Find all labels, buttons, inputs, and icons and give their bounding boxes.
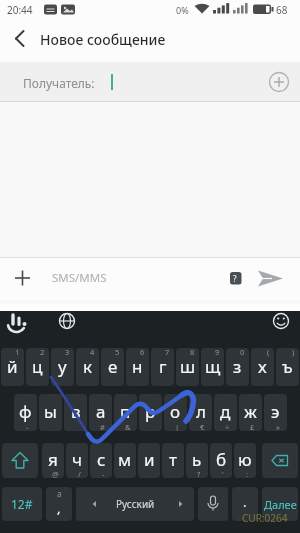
button[interactable]: о [164,394,187,431]
staticText: ю [238,448,252,471]
button[interactable]: е [101,348,124,386]
staticText: | [175,422,180,431]
staticText: ф [19,400,32,423]
button[interactable] [268,308,294,334]
staticText: ш [180,355,196,378]
staticText: 5 [115,348,120,357]
staticText: б [216,448,227,471]
button[interactable]: . [232,487,258,521]
staticText: й [7,355,18,378]
staticText: 6 [140,348,145,357]
staticText: 1 [15,348,20,357]
button[interactable] [250,262,292,294]
staticText: ' [222,469,224,478]
staticText: , [57,499,61,517]
staticText: . [243,493,247,511]
button[interactable]: ъ [276,348,299,386]
staticText: 9 [215,348,220,357]
button[interactable]: а [89,394,112,431]
staticText: » [276,422,280,431]
button[interactable]: щ [201,348,224,386]
staticText: е [108,355,118,378]
staticText: € [200,422,205,431]
button[interactable]: б [210,443,232,478]
button[interactable] [6,26,32,52]
staticText: с [97,448,106,471]
staticText: 8 [190,348,195,357]
button[interactable]: Русский [76,487,194,521]
button[interactable] [198,487,228,521]
button[interactable]: ш [176,348,199,386]
staticText: ь [192,448,202,471]
staticText: 12# [11,496,33,512]
button[interactable]: ф [14,394,37,431]
button[interactable]: ь [186,443,208,478]
staticText: ÷ [225,422,230,431]
staticText: - [102,469,105,478]
button[interactable]: з [226,348,249,386]
button[interactable]: 12# [2,487,42,521]
button[interactable] [2,443,38,478]
staticText: @ [52,469,59,478]
button[interactable]: Далее [262,487,298,521]
staticText: & [125,422,131,431]
button[interactable]: и [138,443,160,478]
button[interactable] [8,264,36,292]
staticText: ? [233,273,237,284]
staticText: £ [250,422,255,431]
staticText: ( [267,348,270,357]
staticText: 68 [276,3,288,17]
staticText: ы [44,400,57,423]
button[interactable]: ц [26,348,49,386]
staticText: я [48,448,58,471]
button[interactable]: г [151,348,174,386]
button[interactable]: х [251,348,274,386]
button[interactable]: м [114,443,136,478]
button[interactable]: д [214,394,237,431]
staticText: Русский [116,497,155,511]
staticText: п [120,400,131,423]
staticText: ч [72,448,83,471]
staticText: ж [244,400,257,423]
staticText: ) [292,348,295,357]
button[interactable]: п [114,394,137,431]
button[interactable]: ю [234,443,256,478]
staticText: н [132,355,143,378]
staticText: т [169,448,177,471]
button[interactable]: л [189,394,212,431]
staticText: a [57,488,62,499]
staticText: щ [205,355,221,378]
button[interactable]: ы [39,394,62,431]
button[interactable]: э [264,394,287,431]
staticText: / [78,469,81,478]
staticText: д [220,400,231,423]
button[interactable]: у [51,348,74,386]
button[interactable] [262,443,298,478]
button[interactable]: н [126,348,149,386]
staticText: 7 [165,348,170,357]
button[interactable]: ч [66,443,88,478]
staticText: в [71,400,81,423]
staticText: SMS/MMS [52,270,107,286]
button[interactable]: я [42,443,64,478]
staticText: Далее [264,497,297,512]
staticText: м [118,448,132,471]
button[interactable]: т [162,443,184,478]
button[interactable]: к [76,348,99,386]
staticText: г [159,355,167,378]
button[interactable]: a [46,487,72,521]
staticText: # [100,422,105,431]
staticText: ц [32,355,43,378]
button[interactable]: й [1,348,24,386]
button[interactable]: с [90,443,112,478]
staticText: 0% [176,4,189,16]
staticText: о [170,400,181,423]
staticText: у [58,355,67,378]
button[interactable]: в [64,394,87,431]
button[interactable] [4,308,30,334]
button[interactable]: р [139,394,162,431]
button[interactable]: ж [239,394,262,431]
staticText: Получатель: [23,75,95,91]
button[interactable] [54,308,80,334]
button[interactable] [265,68,293,96]
